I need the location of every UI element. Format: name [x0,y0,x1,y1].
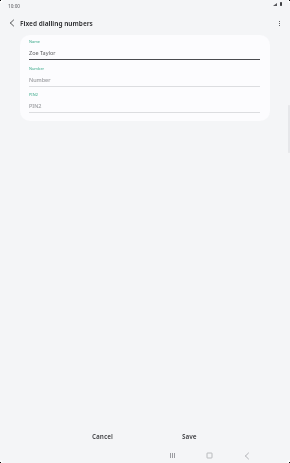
button[interactable]: PIN2 [20,88,270,115]
staticText: Number [29,76,51,83]
button[interactable]: More options [271,15,288,32]
staticText: 10:00 [8,3,21,9]
button[interactable]: Recent apps [163,446,182,463]
button[interactable]: Navigate up [4,15,20,31]
button[interactable]: Cancel [72,427,132,445]
staticText: Cancel [92,432,113,441]
staticText: PIN2 [29,92,38,97]
button[interactable]: Home [200,446,219,463]
staticText: Name [29,39,40,44]
button[interactable]: Back [237,446,256,463]
staticText: Zoe Taylor [29,49,56,56]
staticText: Fixed dialling numbers [20,19,93,28]
staticText: PIN2 [29,102,42,109]
button[interactable]: Save [159,427,219,445]
button[interactable]: Number [20,62,270,89]
staticText: Number [29,66,45,71]
button[interactable]: Name [20,35,270,62]
staticText: Save [182,432,197,441]
